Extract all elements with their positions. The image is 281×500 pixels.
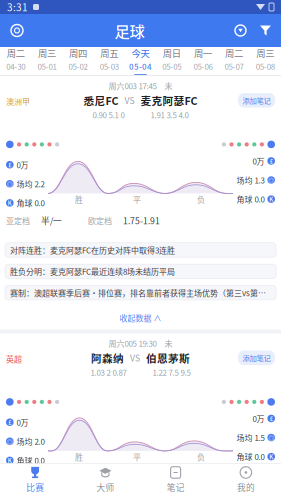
staticText: 赛制：澳超联赛季后赛·排位赛，排名靠前者获得主场优势（第三vs第六；第… [10, 287, 271, 298]
staticText: K [8, 456, 12, 465]
staticText: 05-08 [256, 61, 275, 72]
staticText: 收起数据 ∧ [119, 312, 161, 323]
staticText: 05-03 [100, 61, 119, 72]
staticText: K [269, 195, 273, 203]
staticText: 05-02 [69, 61, 88, 72]
button[interactable]: 周日 [156, 42, 187, 80]
staticText: 笔记 [167, 481, 185, 493]
staticText: 场均 2.0 [17, 435, 45, 447]
staticText: 欧定档 [88, 215, 112, 226]
button[interactable]: 周三 [31, 42, 62, 80]
staticText: 05-05 [162, 61, 181, 72]
button[interactable]: 我的 [211, 462, 281, 497]
staticText: 1.22 7.5 9.5 [152, 366, 190, 378]
staticText: 场均 1.3 [236, 174, 264, 186]
staticText: 周二 [225, 46, 243, 60]
staticText: 0万 [17, 416, 29, 428]
staticText: 05-07 [225, 61, 244, 72]
button[interactable]: 添加笔记 [238, 350, 275, 365]
staticText: 角球 0.0 [236, 193, 264, 205]
button[interactable]: 收起数据 ∧ [0, 306, 281, 329]
staticText: 平 [133, 193, 141, 205]
staticText: 0.90 5.1 0 [92, 109, 124, 121]
button[interactable]: Refresh [228, 18, 253, 43]
staticText: VS [130, 351, 140, 364]
staticText: 0万 [252, 155, 264, 167]
staticText: 05-04 [129, 61, 152, 72]
staticText: 周日 [163, 46, 181, 60]
staticText: 对阵连胜：麦克阿瑟FC在历史对阵中取得3连胜 [10, 244, 175, 256]
button[interactable]: 今天 [125, 42, 156, 80]
staticText: 负 [197, 193, 205, 205]
staticText: ◎ [268, 433, 274, 442]
staticText: 比赛 [26, 481, 44, 493]
staticText: 我的 [237, 481, 255, 493]
staticText: K [8, 198, 12, 207]
button[interactable]: 比赛 [0, 462, 70, 497]
staticText: 胜 [75, 193, 83, 205]
staticText: 足球 [114, 19, 144, 42]
staticText: 周三 [38, 46, 56, 60]
button[interactable]: 周五 [94, 42, 125, 80]
staticText: K [269, 452, 273, 461]
staticText: 场均 2.2 [17, 178, 45, 190]
staticText: 周六003 17:45 未 [108, 80, 172, 92]
staticText: 1.91 3.5 4.0 [150, 109, 188, 121]
staticText: 平 [133, 451, 141, 462]
staticText: VS [124, 94, 134, 106]
staticText: 澳洲甲 [6, 95, 30, 107]
staticText: 胜负分明：麦克阿瑟FC最近连续8场未结历平局 [10, 265, 175, 277]
staticText: 今天 [131, 46, 149, 60]
staticText: 欧定档 [85, 472, 109, 484]
staticText: 周四 [69, 46, 87, 60]
button[interactable]: 周三 [250, 42, 281, 80]
staticText: ◎ [7, 437, 13, 446]
staticText: ◎ [268, 176, 274, 184]
staticText: 大师 [96, 481, 114, 493]
staticText: 麦克阿瑟FC [140, 93, 197, 108]
staticText: 角球 0.0 [17, 455, 45, 466]
button[interactable]: 周四 [62, 42, 94, 80]
staticText: 周一 [194, 46, 212, 60]
staticText: 胜 [75, 451, 83, 462]
staticText: 05-06 [193, 61, 212, 72]
staticText: £ [270, 157, 273, 165]
button[interactable]: 周二 [218, 42, 250, 80]
staticText: 场均 1.5 [236, 432, 264, 443]
staticText: 周三 [256, 46, 274, 60]
staticText: £ [8, 160, 11, 169]
staticText: 1.75-1.91 [123, 214, 160, 227]
staticText: 周二 [7, 46, 25, 60]
staticText: 1.03 2 0.87 [90, 366, 126, 378]
staticText: 亚定档 [6, 215, 30, 226]
staticText: £ [8, 418, 11, 427]
button[interactable]: 周一 [187, 42, 218, 80]
staticText: 05-01 [37, 61, 56, 72]
button[interactable]: 周二 [0, 42, 31, 80]
button[interactable]: 大师 [70, 462, 140, 497]
staticText: 3:31 [7, 0, 28, 14]
staticText: 添加笔记 [242, 95, 270, 106]
staticText: 半/一 [41, 214, 62, 227]
staticText: 悉尼FC [83, 93, 118, 108]
staticText: ◎ [7, 179, 13, 188]
staticText: 阿森纳 [91, 350, 124, 365]
button[interactable]: Filter [253, 19, 278, 42]
staticText: £ [270, 414, 273, 423]
staticText: 亚定档 [6, 472, 30, 484]
button[interactable]: 添加笔记 [238, 93, 275, 108]
staticText: 负 [197, 451, 205, 462]
staticText: 一球 [41, 472, 59, 484]
button[interactable]: 笔记 [140, 462, 211, 497]
staticText: 英超 [6, 353, 22, 365]
staticText: 周五 [100, 46, 118, 60]
staticText: 周六005 19:30 未 [108, 337, 172, 349]
staticText: 0万 [252, 413, 264, 424]
staticText: 0万 [17, 159, 29, 170]
staticText: 04-30 [6, 61, 25, 72]
staticText: 添加笔记 [242, 352, 270, 363]
staticText: 角球 0.0 [17, 197, 45, 209]
button[interactable]: Settings [3, 17, 31, 43]
staticText: 角球 0.0 [236, 451, 264, 462]
